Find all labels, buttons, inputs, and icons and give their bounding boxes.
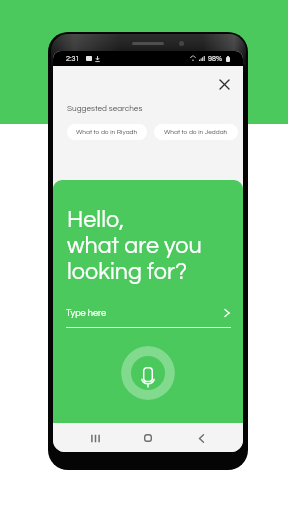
staticText: What to do in Jeddah <box>164 129 228 136</box>
staticText: Type here <box>66 308 107 317</box>
staticText: what are you <box>67 234 202 258</box>
button[interactable]: What to do in Riyadh <box>67 124 147 140</box>
button[interactable]: Type here <box>66 301 231 325</box>
button[interactable]: Back <box>190 427 212 449</box>
button[interactable]: What to do in Jeddah <box>154 124 238 140</box>
button[interactable]: Recents <box>84 427 106 449</box>
button[interactable]: Close <box>216 76 232 92</box>
staticText: 2:31 <box>66 55 80 62</box>
button[interactable]: Voice search <box>121 346 175 400</box>
staticText: 98% <box>208 55 222 62</box>
staticText: looking for? <box>67 260 187 284</box>
button[interactable]: Home <box>137 427 159 449</box>
staticText: What to do in Riyadh <box>76 129 138 136</box>
staticText: Suggested searches <box>67 104 143 112</box>
staticText: Hello, <box>67 208 125 232</box>
